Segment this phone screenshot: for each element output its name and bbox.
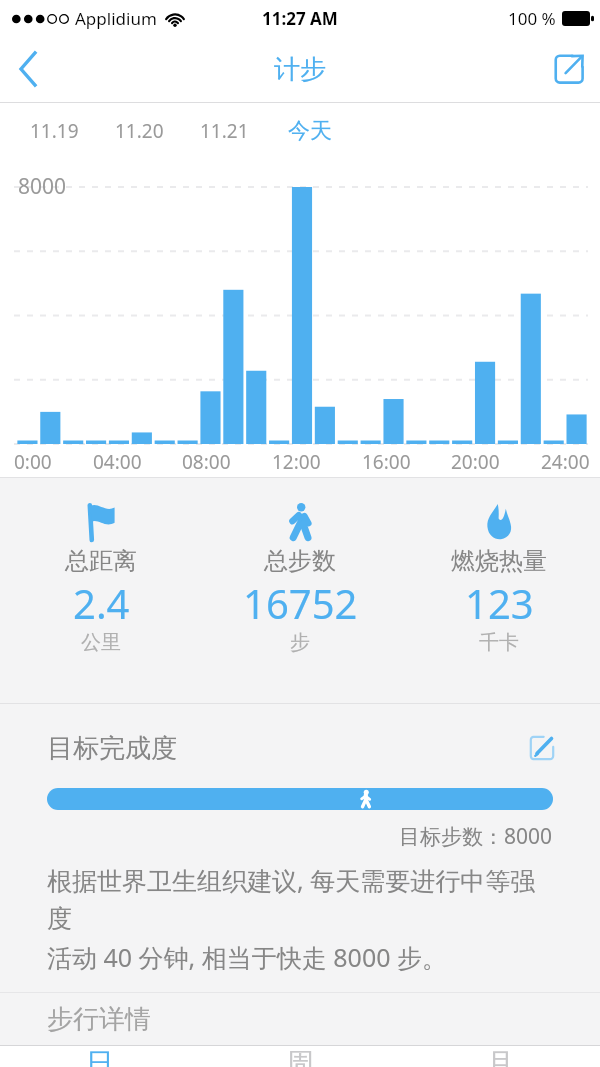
staticText: 20:00 xyxy=(451,449,500,475)
staticText: 04:00 xyxy=(93,449,142,475)
staticText: 08:00 xyxy=(182,449,231,475)
button[interactable]: Edit goal xyxy=(522,728,562,768)
button[interactable] xyxy=(47,788,553,810)
staticText: 总步数 xyxy=(264,546,336,576)
button[interactable]: 总步数 xyxy=(202,478,398,703)
button[interactable]: 步行详情 xyxy=(0,993,600,1045)
staticText: 16:00 xyxy=(362,449,411,475)
staticText: 16752 xyxy=(243,576,358,630)
staticText: 11.19 xyxy=(30,118,79,144)
button[interactable]: 今天 xyxy=(267,103,352,159)
staticText: 步 xyxy=(290,630,310,655)
button[interactable]: 燃烧热量 xyxy=(401,478,597,703)
staticText: 公里 xyxy=(81,630,121,655)
button[interactable]: 日 xyxy=(0,1046,200,1067)
button[interactable]: 11.21 xyxy=(182,103,267,159)
staticText: 步行详情 xyxy=(47,1003,151,1036)
staticText: 目标步数：8000 xyxy=(399,822,553,851)
staticText: 总距离 xyxy=(65,546,137,576)
staticText: 计步 xyxy=(274,53,326,86)
staticText: 24:00 xyxy=(541,449,590,475)
staticText: 2.4 xyxy=(73,576,130,630)
button[interactable]: Back xyxy=(0,39,58,99)
staticText: 8000 xyxy=(18,172,67,201)
staticText: 千卡 xyxy=(479,630,519,655)
staticText: 月 xyxy=(486,1046,514,1067)
staticText: Applidium xyxy=(75,7,157,30)
button[interactable]: 11.19 xyxy=(12,103,97,159)
staticText: 燃烧热量 xyxy=(451,546,547,576)
button[interactable]: 11.20 xyxy=(97,103,182,159)
staticText: 周 xyxy=(286,1046,314,1067)
staticText: 根据世界卫生组织建议, 每天需要进行中等强度 活动 40 分钟, 相当于快走 8… xyxy=(47,863,553,974)
button[interactable]: Share xyxy=(538,39,600,99)
staticText: 今天 xyxy=(288,117,332,145)
staticText: 100 % xyxy=(508,7,556,30)
staticText: 12:00 xyxy=(272,449,321,475)
button[interactable]: 周 xyxy=(200,1046,400,1067)
staticText: 0:00 xyxy=(14,449,52,475)
staticText: 11:27 AM xyxy=(262,7,338,30)
button[interactable]: 总距离 xyxy=(3,478,199,703)
staticText: 目标完成度 xyxy=(47,732,177,765)
button[interactable]: 月 xyxy=(400,1046,600,1067)
staticText: 日 xyxy=(86,1046,114,1067)
staticText: 11.20 xyxy=(115,118,164,144)
staticText: 123 xyxy=(465,576,534,630)
staticText: 11.21 xyxy=(200,118,249,144)
